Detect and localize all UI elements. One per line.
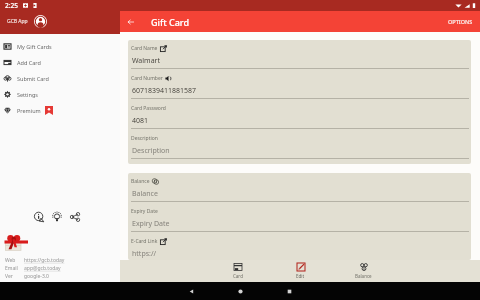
staticText: Premium bbox=[17, 107, 41, 114]
button[interactable]: Settings bbox=[0, 86, 120, 102]
button[interactable]: Recent apps bbox=[265, 282, 314, 300]
staticText: 6071839411881587 bbox=[132, 86, 197, 96]
staticText: Expiry Date bbox=[131, 208, 158, 215]
staticText: 4081 bbox=[132, 116, 149, 126]
button[interactable]: Home bbox=[216, 282, 265, 300]
button[interactable]: Balance bbox=[332, 260, 395, 282]
staticText: Balance bbox=[131, 178, 150, 185]
button[interactable]: Account bbox=[34, 15, 47, 28]
button[interactable]: Card bbox=[206, 260, 269, 282]
staticText: GCB App bbox=[7, 18, 28, 25]
staticText: Card Name bbox=[131, 45, 158, 52]
staticText: Gift Card bbox=[151, 16, 190, 28]
staticText: Ver bbox=[5, 273, 13, 280]
button[interactable]: Back bbox=[167, 282, 216, 300]
staticText: Balance bbox=[355, 273, 372, 279]
staticText: Email bbox=[5, 265, 18, 272]
staticText: Card Number bbox=[131, 75, 163, 82]
button[interactable]: Premium bbox=[0, 102, 120, 118]
staticText: OPTIONS bbox=[448, 18, 473, 25]
button[interactable]: https://gcb.today bbox=[24, 257, 65, 264]
staticText: Description bbox=[131, 135, 158, 142]
staticText: Web bbox=[5, 257, 16, 264]
staticText: Expiry Date bbox=[132, 219, 170, 229]
staticText: Settings bbox=[17, 91, 38, 98]
button[interactable]: OPTIONS bbox=[441, 11, 480, 32]
button[interactable]: Tips bbox=[50, 210, 64, 224]
staticText: https:// bbox=[132, 249, 157, 259]
staticText: google-3.0 bbox=[24, 273, 49, 280]
staticText: Walmart bbox=[132, 56, 160, 66]
staticText: Edit bbox=[296, 273, 305, 279]
staticText: Add Card bbox=[17, 59, 41, 66]
button[interactable]: Back bbox=[120, 11, 141, 32]
staticText: Balance bbox=[132, 189, 158, 199]
staticText: Card Password bbox=[131, 105, 166, 112]
staticText: E-Card Link bbox=[131, 238, 158, 245]
button[interactable]: Add Card bbox=[0, 54, 120, 70]
staticText: My Gift Cards bbox=[17, 43, 52, 50]
staticText: 2:25 bbox=[5, 1, 18, 10]
button[interactable]: Share bbox=[68, 210, 82, 224]
staticText: Card bbox=[233, 273, 243, 279]
staticText: Description bbox=[132, 146, 170, 156]
button[interactable]: app@gcb.today bbox=[24, 265, 61, 272]
button[interactable]: Submit Card bbox=[0, 70, 120, 86]
staticText: Submit Card bbox=[17, 75, 49, 82]
button[interactable]: About bbox=[32, 210, 46, 224]
button[interactable]: Edit bbox=[269, 260, 332, 282]
button[interactable]: My Gift Cards bbox=[0, 38, 120, 54]
